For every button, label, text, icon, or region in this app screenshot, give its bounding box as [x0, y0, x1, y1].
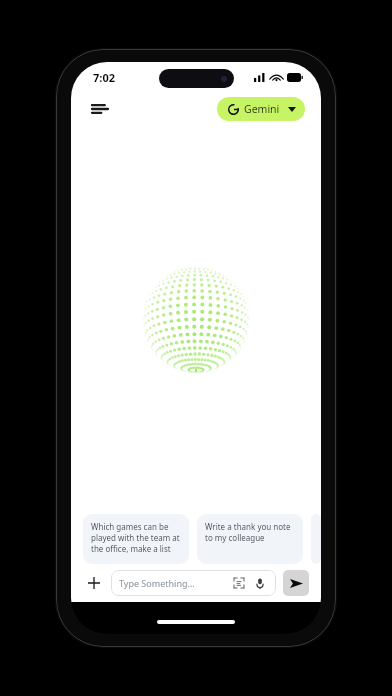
button[interactable]: Menu	[87, 96, 113, 122]
button[interactable]: Voice input	[252, 575, 268, 591]
button[interactable]: Which games can be played with the team …	[83, 514, 189, 564]
staticText: Write a thank you note to my colleague	[205, 521, 295, 543]
button[interactable]: Scan text	[231, 575, 247, 591]
staticText: Type Something...	[119, 577, 195, 589]
staticText: 7:02	[93, 70, 115, 85]
button[interactable]: Type Something...	[111, 570, 276, 596]
staticText: Gemini	[244, 102, 280, 116]
button[interactable]: Send	[283, 570, 309, 596]
button[interactable]: Add attachment	[83, 572, 105, 594]
staticText: Which games can be played with the team …	[91, 521, 181, 554]
button[interactable]: Gemini	[217, 97, 305, 121]
button[interactable]: Write a thank you note to my colleague	[197, 514, 303, 564]
